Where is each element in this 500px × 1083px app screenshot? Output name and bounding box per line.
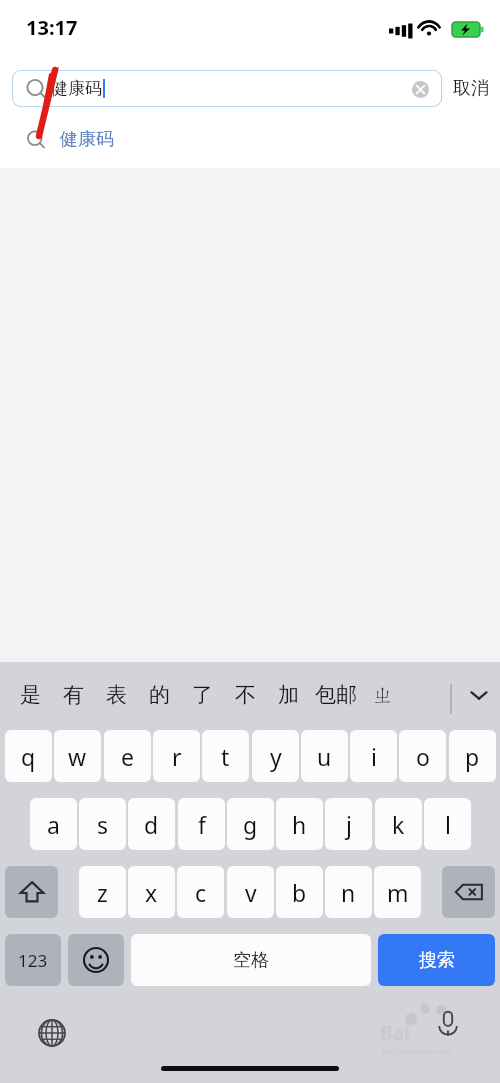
button[interactable]: 123 xyxy=(5,934,61,986)
button[interactable]: 不 xyxy=(235,682,256,708)
button[interactable]: w xyxy=(54,730,101,782)
staticText: e xyxy=(121,741,134,772)
button[interactable]: j xyxy=(325,798,372,850)
button[interactable]: 有 xyxy=(63,682,84,708)
button[interactable]: y xyxy=(252,730,299,782)
button[interactable]: 的 xyxy=(149,682,170,708)
button[interactable]: n xyxy=(325,866,372,918)
staticText: c xyxy=(195,877,207,908)
staticText: j xyxy=(346,809,352,840)
staticText: jingyan.baidu.com xyxy=(382,1045,452,1056)
button[interactable]: 取消 xyxy=(453,77,489,100)
button[interactable]: k xyxy=(375,798,422,850)
staticText: 有 xyxy=(63,682,84,708)
staticText: 表 xyxy=(106,682,127,708)
button[interactable]: v xyxy=(227,866,274,918)
button[interactable]: Backspace xyxy=(442,866,495,918)
button[interactable]: Switch keyboard language xyxy=(33,1014,71,1052)
button[interactable]: r xyxy=(153,730,200,782)
staticText: a xyxy=(47,809,60,840)
button[interactable]: t xyxy=(202,730,249,782)
staticText: f xyxy=(198,809,206,840)
button[interactable]: Voice input xyxy=(429,1006,467,1044)
button[interactable]: h xyxy=(276,798,323,850)
button[interactable]: m xyxy=(374,866,421,918)
button[interactable]: s xyxy=(79,798,126,850)
button[interactable]: l xyxy=(424,798,471,850)
button[interactable]: p xyxy=(449,730,496,782)
button[interactable]: o xyxy=(399,730,446,782)
button[interactable]: 包邮 xyxy=(315,682,357,708)
staticText: 健康码 xyxy=(51,78,102,99)
staticText: 13:17 xyxy=(26,14,78,41)
staticText: k xyxy=(392,809,405,840)
button[interactable]: Emoji keyboard xyxy=(68,934,124,986)
staticText: i xyxy=(371,741,377,772)
button[interactable]: 表 xyxy=(106,682,127,708)
staticText: u xyxy=(317,741,332,772)
button[interactable]: i xyxy=(350,730,397,782)
staticText: x xyxy=(145,877,158,908)
staticText: 健康码 xyxy=(60,128,114,151)
staticText: r xyxy=(172,741,182,772)
staticText: q xyxy=(21,741,36,772)
staticText: t xyxy=(221,741,230,772)
staticText: 包邮 xyxy=(315,682,357,708)
staticText: s xyxy=(97,809,109,840)
button[interactable]: 加 xyxy=(278,682,299,708)
staticText: 搜索 xyxy=(419,949,455,972)
button[interactable]: g xyxy=(227,798,274,850)
button[interactable]: Hide candidates xyxy=(458,662,500,728)
staticText: l xyxy=(445,809,451,840)
button[interactable]: q xyxy=(5,730,52,782)
button[interactable]: e xyxy=(104,730,151,782)
staticText: d xyxy=(144,809,159,840)
staticText: g xyxy=(243,809,258,840)
button[interactable]: f xyxy=(178,798,225,850)
staticText: 加 xyxy=(278,682,299,708)
staticText: 取消 xyxy=(453,77,489,100)
button[interactable]: 空格 xyxy=(131,934,371,986)
button[interactable]: d xyxy=(128,798,175,850)
button[interactable]: 健康码 xyxy=(12,70,442,107)
staticText: n xyxy=(341,877,356,908)
staticText: o xyxy=(416,741,430,772)
button[interactable]: a xyxy=(30,798,77,850)
staticText: Bai xyxy=(380,1020,410,1046)
button[interactable]: Clear search text xyxy=(407,76,433,102)
button[interactable]: ㄓ xyxy=(373,682,395,708)
button[interactable]: 健康码 xyxy=(0,118,500,160)
button[interactable]: Shift xyxy=(5,866,58,918)
staticText: 123 xyxy=(18,949,48,972)
button[interactable]: u xyxy=(301,730,348,782)
button[interactable]: 是 xyxy=(20,682,41,708)
button[interactable]: c xyxy=(177,866,224,918)
staticText: p xyxy=(465,741,480,772)
button[interactable]: 了 xyxy=(192,682,213,708)
button[interactable]: b xyxy=(276,866,323,918)
button[interactable]: z xyxy=(79,866,126,918)
button[interactable]: x xyxy=(128,866,175,918)
staticText: ㄓ xyxy=(373,682,395,708)
staticText: v xyxy=(245,877,257,908)
staticText: 是 xyxy=(20,682,41,708)
staticText: 了 xyxy=(192,682,213,708)
staticText: 不 xyxy=(235,682,256,708)
staticText: 空格 xyxy=(233,949,269,972)
staticText: 的 xyxy=(149,682,170,708)
staticText: m xyxy=(387,877,409,908)
staticText: w xyxy=(68,741,87,772)
staticText: h xyxy=(292,809,307,840)
staticText: y xyxy=(270,741,282,772)
staticText: z xyxy=(97,877,108,908)
button[interactable]: 搜索 xyxy=(378,934,495,986)
staticText: b xyxy=(292,877,307,908)
